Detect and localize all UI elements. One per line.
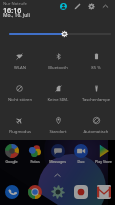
button[interactable]: App 3 — [46, 184, 69, 199]
staticText: Fotos — [30, 159, 40, 164]
staticText: Duo — [77, 159, 85, 164]
staticText: 16:16 — [3, 5, 22, 15]
button[interactable]: Taschenlampe — [77, 72, 115, 104]
staticText: Mo., 16. Juli — [3, 12, 30, 19]
button[interactable]: Collapse — [101, 2, 109, 10]
button[interactable]: App 4 — [69, 184, 92, 199]
staticText: Google — [5, 159, 18, 164]
staticText: Play Store — [95, 159, 112, 164]
staticText: Automatisch drehen — [81, 129, 111, 136]
staticText: WLAN — [5, 65, 35, 71]
staticText: Messages — [49, 159, 66, 164]
button[interactable]: Messages — [46, 144, 69, 168]
button[interactable]: Edit — [73, 2, 81, 10]
button[interactable]: Bluetooth — [39, 40, 77, 72]
button[interactable]: Keine SIM-Karte — [39, 72, 77, 104]
button[interactable]: Standort — [39, 104, 77, 136]
button[interactable]: Duo — [69, 144, 92, 168]
staticText: Flugmodus — [5, 129, 35, 135]
button[interactable]: App 1 — [0, 184, 23, 199]
button[interactable]: Play Store — [92, 144, 115, 168]
button[interactable]: 85 % — [77, 40, 115, 72]
button[interactable]: App 2 — [23, 184, 46, 199]
button[interactable]: Flugmodus — [0, 104, 39, 136]
button[interactable]: User — [59, 2, 67, 10]
button[interactable]: Google — [0, 144, 23, 168]
staticText: 85 % — [81, 65, 111, 71]
button[interactable]: Brightness — [0, 24, 115, 40]
staticText: Standort — [43, 129, 73, 135]
button[interactable]: Automatisch drehen — [77, 104, 115, 136]
button[interactable]: App 5 — [92, 184, 115, 199]
button[interactable]: Settings — [87, 2, 95, 10]
staticText: Keine SIM-Karte — [43, 97, 73, 104]
button[interactable]: Fotos — [23, 144, 46, 168]
staticText: Nicht stören — [5, 97, 35, 103]
staticText: Taschenlampe — [81, 97, 111, 103]
button[interactable]: Nicht stören — [0, 72, 39, 104]
button[interactable]: WLAN — [0, 40, 39, 72]
staticText: Bluetooth — [43, 65, 73, 71]
staticText: Nur Notrufe — [3, 1, 27, 7]
